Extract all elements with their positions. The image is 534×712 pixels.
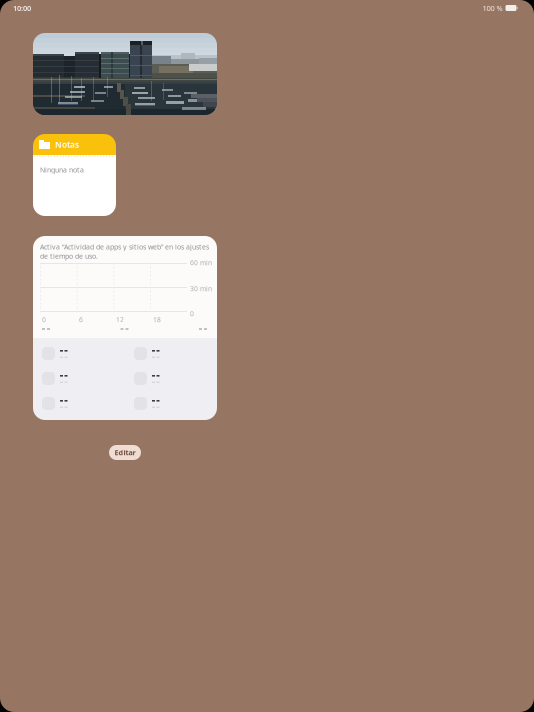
staticText: 6 bbox=[79, 315, 83, 324]
staticText: 30 min bbox=[190, 284, 212, 293]
staticText: Activa “Actividad de apps y sitios web” … bbox=[40, 242, 209, 261]
staticText: 100 % bbox=[482, 3, 502, 13]
staticText: Ninguna nota bbox=[40, 165, 84, 174]
staticText: 10:00 bbox=[13, 3, 31, 13]
staticText: 60 min bbox=[190, 258, 212, 267]
staticText: 0 bbox=[190, 309, 194, 318]
staticText: Notas bbox=[55, 139, 79, 150]
staticText: Editar bbox=[114, 448, 135, 457]
button[interactable]: Notas bbox=[33, 134, 116, 216]
staticText: 0 bbox=[42, 315, 46, 324]
button[interactable]: Tiempo de uso bbox=[33, 236, 217, 420]
staticText: 12 bbox=[116, 315, 124, 324]
button[interactable]: Editar bbox=[109, 445, 141, 460]
staticText: 18 bbox=[153, 315, 161, 324]
button[interactable]: Fotos bbox=[33, 33, 217, 115]
